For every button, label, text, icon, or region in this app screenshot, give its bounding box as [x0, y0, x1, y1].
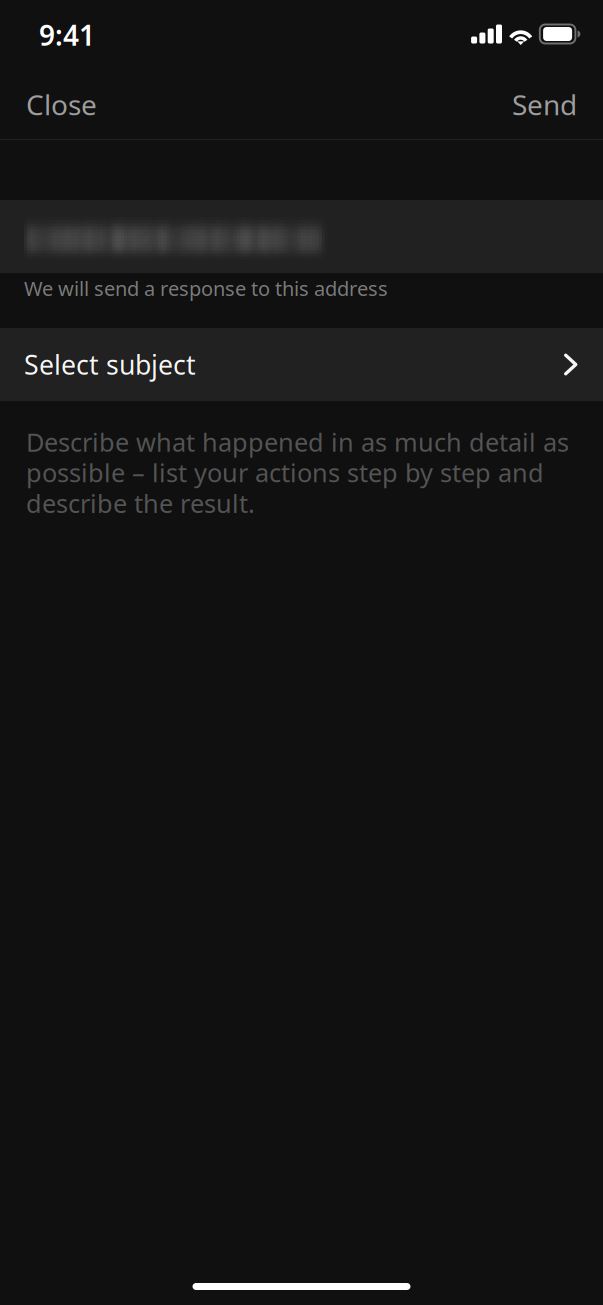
- staticText: 9:41: [39, 16, 95, 54]
- staticText: Close: [26, 86, 97, 123]
- button[interactable]: Send: [486, 66, 603, 140]
- staticText: We will send a response to this address: [24, 275, 388, 302]
- button[interactable]: [0, 200, 603, 273]
- button[interactable]: Select subject: [0, 328, 603, 401]
- button[interactable]: Close: [0, 66, 123, 140]
- staticText: Describe what happened in as much detail…: [26, 425, 569, 520]
- staticText: Select subject: [24, 347, 196, 382]
- staticText: Send: [512, 86, 577, 123]
